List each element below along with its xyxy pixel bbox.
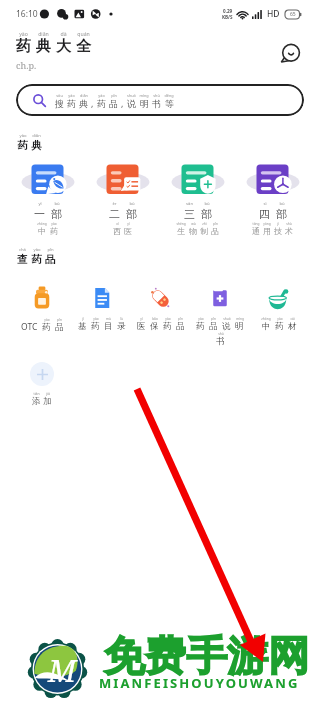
staticText: 部 xyxy=(51,207,62,221)
staticText: yào xyxy=(19,133,27,139)
staticText: yī xyxy=(38,201,42,207)
staticText: yào xyxy=(19,30,28,37)
staticText: 添 xyxy=(32,396,41,407)
staticText: 药 xyxy=(50,226,58,236)
staticText: 四 xyxy=(259,207,270,221)
staticText: 医 xyxy=(124,226,132,236)
staticText: 品 xyxy=(55,322,64,333)
button[interactable]: yào xyxy=(17,133,42,152)
staticText: èr xyxy=(112,201,117,207)
staticText: mù xyxy=(106,317,111,321)
staticText: cái xyxy=(290,317,295,321)
staticText: tiān xyxy=(33,391,40,396)
staticText: bù xyxy=(129,201,135,207)
staticText: pǐn xyxy=(111,93,117,98)
staticText: shù xyxy=(286,222,292,226)
staticText: 药 xyxy=(91,321,100,332)
staticText: OTC xyxy=(21,321,38,333)
staticText: jiā xyxy=(46,391,50,396)
staticText: lù xyxy=(120,317,123,321)
staticText: pǐn xyxy=(213,222,218,226)
staticText: bǎo xyxy=(152,317,158,321)
staticText: zhōng xyxy=(37,222,47,226)
staticText: 品 xyxy=(211,226,219,236)
staticText: 典 xyxy=(31,139,42,152)
staticText: yào xyxy=(51,222,57,226)
staticText: shuō xyxy=(223,317,231,321)
staticText: 通 xyxy=(252,226,260,236)
button[interactable]: zhōng xyxy=(249,285,308,332)
staticText: 目 xyxy=(104,321,113,332)
staticText: 术 xyxy=(285,226,293,236)
button[interactable]: OTC xyxy=(12,285,72,333)
staticText: míng xyxy=(139,93,149,98)
staticText: bù xyxy=(204,201,210,207)
staticText: bù xyxy=(279,201,285,207)
button[interactable]: yī xyxy=(10,159,85,236)
staticText: 药 xyxy=(42,322,51,333)
staticText: 部 xyxy=(126,207,137,221)
staticText: shuō xyxy=(127,93,136,98)
staticText: 65 xyxy=(290,11,296,18)
button[interactable]: sì xyxy=(235,159,310,236)
staticText: , xyxy=(91,97,94,109)
staticText: 全 xyxy=(76,37,91,56)
button[interactable]: yào xyxy=(190,285,249,347)
button[interactable]: yī xyxy=(131,285,190,332)
staticText: 药 xyxy=(275,321,284,332)
staticText: shēng xyxy=(176,222,186,226)
button[interactable]: chá xyxy=(17,247,56,266)
staticText: 物 xyxy=(189,226,197,236)
button[interactable]: jī xyxy=(72,285,131,332)
staticText: 基 xyxy=(78,321,87,332)
staticText: 书 xyxy=(216,336,225,347)
staticText: HD xyxy=(267,8,280,20)
staticText: yào xyxy=(33,247,41,253)
staticText: yào xyxy=(44,318,50,322)
staticText: 生 xyxy=(177,226,185,236)
staticText: shū xyxy=(218,332,224,336)
staticText: 医 xyxy=(137,321,146,332)
staticText: 品 xyxy=(176,321,185,332)
staticText: 药 xyxy=(17,139,28,152)
staticText: pǐn xyxy=(47,247,54,253)
staticText: 药 xyxy=(196,321,205,332)
staticText: MIANFEISHOUYOUWANG xyxy=(99,674,300,692)
staticText: 品 xyxy=(45,253,56,266)
staticText: bù xyxy=(54,201,60,207)
staticText: diǎn xyxy=(32,133,41,139)
staticText: yī xyxy=(127,222,130,226)
staticText: míng xyxy=(236,317,244,321)
staticText: zhōng xyxy=(261,317,271,321)
staticText: 免费手游网 xyxy=(104,631,309,683)
staticText: děng xyxy=(164,93,174,98)
staticText: 说 xyxy=(222,321,231,332)
staticText: yào xyxy=(277,317,283,321)
staticText: 一 xyxy=(34,207,45,221)
staticText: xī xyxy=(116,222,119,226)
staticText: pǐn xyxy=(178,317,183,321)
button[interactable]: sōu xyxy=(16,84,304,116)
staticText: 药 xyxy=(67,98,76,109)
staticText: 0.29 xyxy=(223,8,233,14)
staticText: wù xyxy=(191,222,196,226)
staticText: yī xyxy=(140,317,143,321)
button[interactable]: Feedback chat xyxy=(277,40,303,66)
staticText: 部 xyxy=(201,207,212,221)
staticText: quán xyxy=(77,30,90,37)
staticText: 品 xyxy=(109,98,118,109)
staticText: 书 xyxy=(152,98,161,109)
staticText: sān xyxy=(186,201,193,207)
staticText: yào xyxy=(93,317,99,321)
staticText: tōng xyxy=(252,222,260,226)
button[interactable]: èr xyxy=(85,159,160,236)
staticText: KB/S xyxy=(222,14,233,20)
staticText: 加 xyxy=(43,396,52,407)
staticText: yào xyxy=(165,317,171,321)
button[interactable]: tiān xyxy=(12,362,71,407)
staticText: 16:10 xyxy=(16,8,38,20)
staticText: 药 xyxy=(16,37,31,56)
staticText: 技 xyxy=(274,226,282,236)
button[interactable]: sān xyxy=(160,159,235,236)
staticText: chá xyxy=(19,247,26,253)
